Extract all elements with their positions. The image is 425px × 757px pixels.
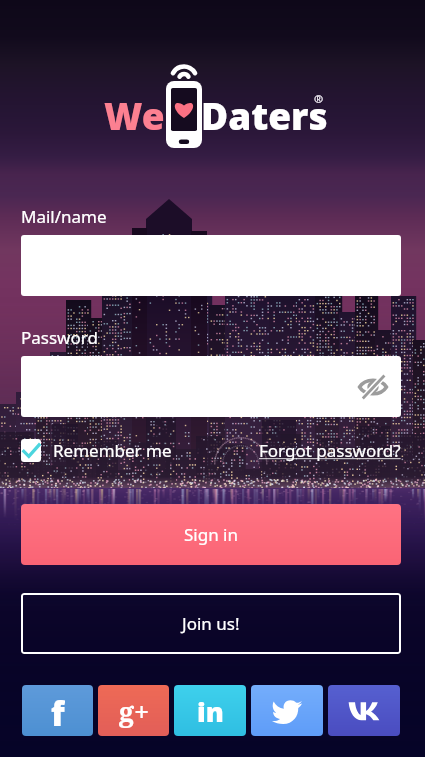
- staticText: Sign in: [184, 523, 238, 546]
- button[interactable]: VK: [328, 685, 400, 736]
- button[interactable]: Remember me: [21, 439, 172, 462]
- button[interactable]: LinkedIn: [174, 685, 246, 736]
- staticText: Join us!: [182, 612, 240, 635]
- staticText: Password: [21, 326, 98, 349]
- button[interactable]: Forgot password?: [259, 439, 401, 462]
- button[interactable]: Show password: [21, 356, 401, 417]
- button[interactable]: Facebook: [22, 685, 93, 736]
- staticText: in: [197, 693, 224, 730]
- staticText: Mail/name: [21, 205, 107, 228]
- button[interactable]: Twitter: [251, 685, 323, 736]
- button[interactable]: Show password: [356, 370, 390, 404]
- staticText: g+: [119, 693, 150, 730]
- staticText: ®: [314, 91, 324, 106]
- staticText: f: [51, 691, 65, 731]
- staticText: Remember me: [53, 439, 172, 462]
- staticText: We: [104, 90, 165, 140]
- staticText: Daters: [201, 90, 328, 140]
- button[interactable]: Sign in: [21, 504, 401, 565]
- button[interactable]: Join us!: [21, 593, 401, 654]
- button[interactable]: Google Plus: [98, 685, 169, 736]
